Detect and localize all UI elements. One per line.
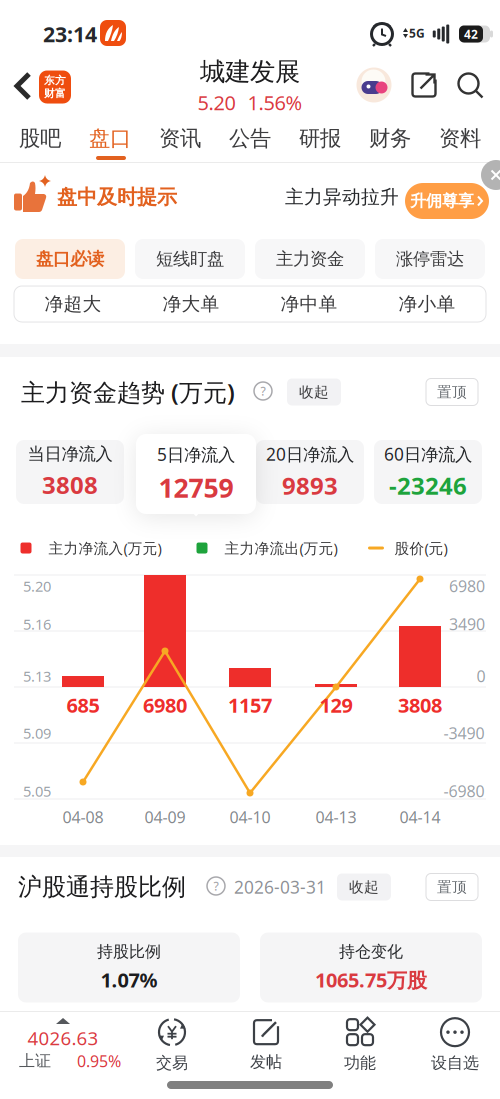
staticText: 净超大 <box>44 292 101 315</box>
staticText: 4026.63 <box>27 1026 98 1050</box>
staticText: 净小单 <box>398 292 455 315</box>
staticText: -23246 <box>389 470 467 501</box>
button[interactable]: 升佣尊享 <box>405 183 489 219</box>
button[interactable]: 置顶 <box>426 873 478 900</box>
staticText: 5.20 <box>197 89 235 116</box>
staticText: 23:14 <box>43 20 97 48</box>
staticText: 04-10 <box>229 806 270 828</box>
staticText: 5.09 <box>23 723 51 743</box>
staticText: 收起 <box>349 878 379 896</box>
staticText: 5.05 <box>23 781 51 801</box>
staticText: 04-13 <box>315 806 356 828</box>
staticText: 短线盯盘 <box>156 248 224 270</box>
staticText: 60日净流入 <box>384 443 472 466</box>
button[interactable]: 交易 <box>132 1014 212 1076</box>
button[interactable]: 东方财富 <box>39 70 71 103</box>
button[interactable]: 持股比例 <box>18 932 240 1002</box>
staticText: 置顶 <box>437 383 467 401</box>
staticText: 5日净流入 <box>157 443 235 466</box>
button[interactable]: 持仓变化 <box>260 932 482 1002</box>
staticText: 04-08 <box>62 806 103 828</box>
staticText: 04-14 <box>399 806 440 828</box>
staticText: 功能 <box>344 1053 376 1073</box>
staticText: 上证 <box>19 1051 51 1071</box>
staticText: 设自选 <box>431 1053 479 1073</box>
staticText: 1.07% <box>100 966 157 993</box>
button[interactable]: 20日净流入 <box>256 440 364 504</box>
staticText: 东方 <box>44 74 66 87</box>
staticText: 盘口 <box>89 125 131 152</box>
button[interactable]: 盘口必读 <box>15 239 125 279</box>
button[interactable]: Search <box>457 72 484 99</box>
staticText: 3490 <box>449 613 485 635</box>
staticText: 持股比例 <box>97 942 161 962</box>
staticText: 股价(元) <box>394 538 447 558</box>
staticText: ? <box>260 383 265 399</box>
button[interactable]: 4026.63 <box>0 1013 126 1075</box>
staticText: 资讯 <box>159 125 201 152</box>
staticText: 9893 <box>282 470 338 501</box>
staticText: 收起 <box>299 383 329 401</box>
staticText: 42 <box>464 26 478 42</box>
button[interactable]: 功能 <box>320 1014 400 1076</box>
staticText: 129 <box>319 692 352 718</box>
staticText: 5.13 <box>23 666 51 686</box>
staticText: 6980 <box>143 692 187 718</box>
staticText: 交易 <box>156 1053 188 1073</box>
staticText: 净大单 <box>162 292 219 315</box>
staticText: 盘中及时提示 <box>57 185 177 209</box>
button[interactable]: 公告 <box>215 117 285 160</box>
staticText: 6980 <box>449 575 485 597</box>
staticText: 主力异动拉升 <box>285 185 399 208</box>
button[interactable]: 研报 <box>285 117 355 160</box>
staticText: 城建发展 <box>200 56 300 87</box>
button[interactable]: 发帖 <box>226 1014 306 1076</box>
staticText: 财富 <box>44 87 66 100</box>
staticText: -6980 <box>443 780 484 802</box>
button[interactable]: Back <box>15 72 33 100</box>
staticText: 3808 <box>42 469 98 501</box>
button[interactable]: AI assistant <box>356 67 391 102</box>
staticText: 净中单 <box>280 292 337 315</box>
staticText: 5.16 <box>23 614 51 634</box>
staticText: 财务 <box>369 125 411 152</box>
staticText: 主力净流出(万元) <box>224 538 337 558</box>
staticText: 1157 <box>228 692 272 718</box>
button[interactable]: 资料 <box>425 117 495 160</box>
staticText: 涨停雷达 <box>396 248 464 270</box>
staticText: 股吧 <box>19 125 61 152</box>
staticText: 升佣尊享 <box>410 191 474 211</box>
button[interactable]: 股吧 <box>5 117 75 160</box>
button[interactable]: 主力资金 <box>255 239 365 279</box>
button[interactable]: 财务 <box>355 117 425 160</box>
staticText: 发帖 <box>250 1052 282 1072</box>
staticText: -3490 <box>443 722 484 744</box>
button[interactable]: 置顶 <box>426 378 478 405</box>
staticText: 研报 <box>299 125 341 152</box>
button[interactable]: 60日净流入 <box>374 440 482 504</box>
button[interactable]: 设自选 <box>410 1014 500 1076</box>
button[interactable]: 5日净流入 <box>136 428 256 520</box>
button[interactable]: 收起 <box>337 873 391 900</box>
staticText: 公告 <box>229 125 271 152</box>
button[interactable]: 盘口 <box>75 117 145 160</box>
staticText: 0.95% <box>77 1050 121 1072</box>
staticText: 20日净流入 <box>266 443 354 466</box>
staticText: 当日净流入 <box>27 443 112 465</box>
staticText: 0 <box>476 665 485 687</box>
staticText: 主力资金 <box>276 248 344 270</box>
button[interactable]: Share <box>410 71 437 98</box>
staticText: 持仓变化 <box>339 942 403 962</box>
button[interactable]: 资讯 <box>145 117 215 160</box>
button[interactable]: 当日净流入 <box>16 440 124 504</box>
staticText: 1065.75万股 <box>315 966 427 993</box>
button[interactable]: Close <box>481 160 500 190</box>
button[interactable]: 收起 <box>287 378 341 405</box>
staticText: 沪股通持股比例 <box>18 872 186 902</box>
staticText: 5G <box>409 25 425 41</box>
button[interactable]: 涨停雷达 <box>375 239 485 279</box>
button[interactable]: 短线盯盘 <box>135 239 245 279</box>
staticText: 主力资金趋势 (万元) <box>21 376 235 408</box>
staticText: 12759 <box>158 470 233 505</box>
staticText: 1.56% <box>247 89 302 116</box>
